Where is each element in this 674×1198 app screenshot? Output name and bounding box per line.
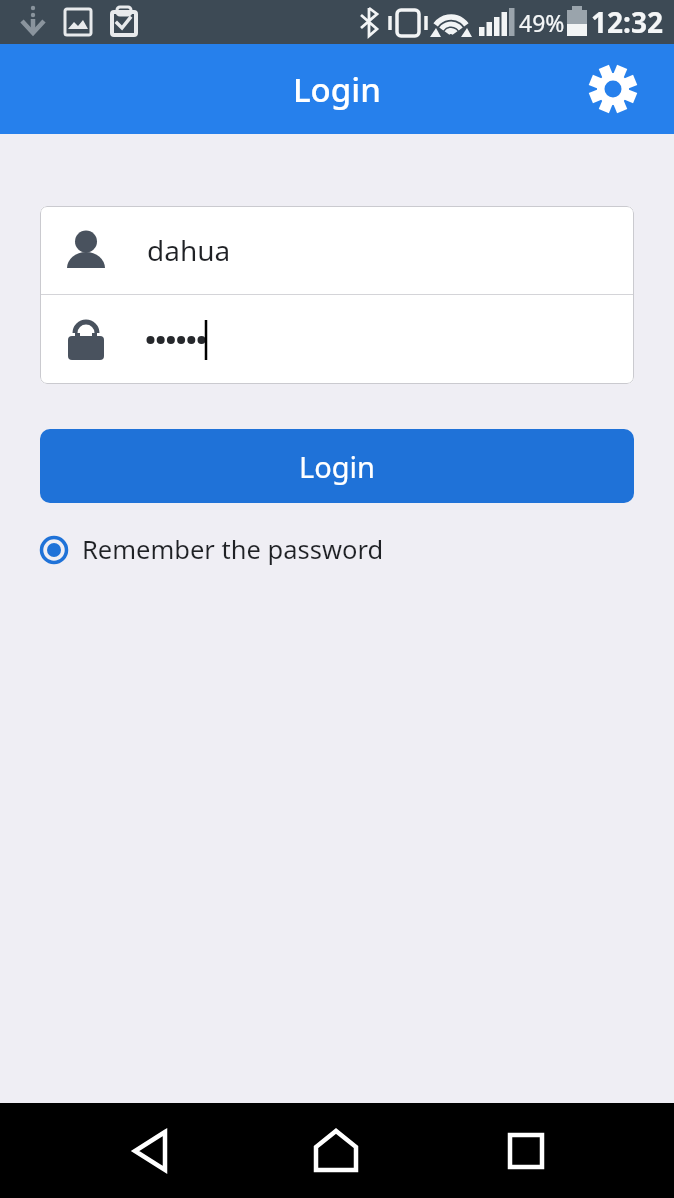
staticText: dahua — [147, 231, 231, 269]
staticText: Remember the password — [82, 532, 384, 567]
staticText: 12:32 — [591, 3, 663, 41]
button[interactable]: Remember the password — [40, 532, 384, 567]
staticText: Login — [299, 447, 375, 486]
button[interactable] — [301, 1116, 371, 1186]
staticText: Login — [293, 67, 381, 112]
button[interactable] — [589, 65, 637, 113]
button[interactable] — [491, 1116, 561, 1186]
button[interactable]: dahua — [40, 206, 634, 294]
staticText: 49% — [519, 7, 565, 38]
button[interactable]: Login — [40, 429, 634, 503]
button[interactable] — [115, 1116, 185, 1186]
button[interactable] — [40, 295, 634, 384]
